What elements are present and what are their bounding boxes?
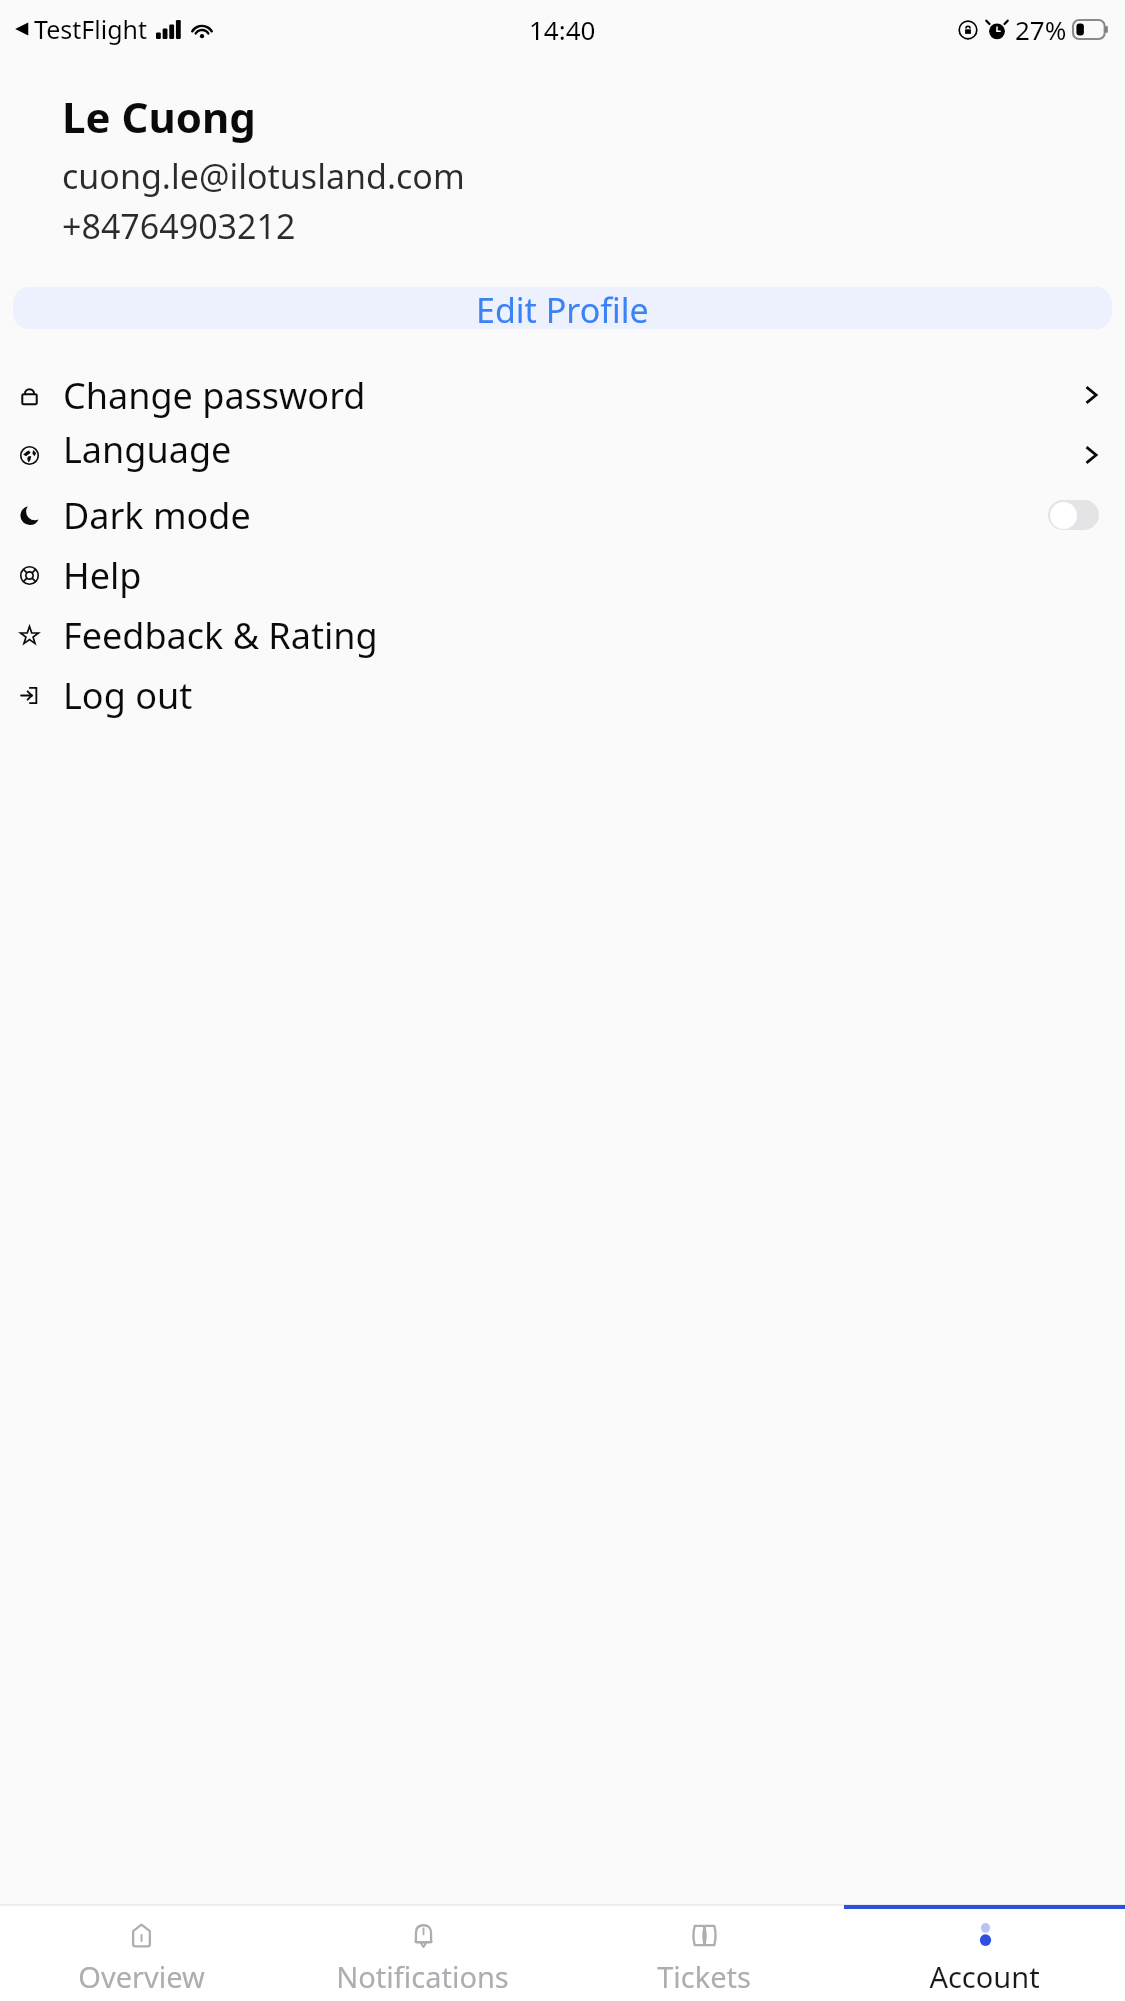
staticText: Edit Profile — [476, 287, 649, 329]
staticText: Overview — [78, 1957, 205, 1996]
button[interactable]: Help — [0, 545, 1125, 605]
button[interactable]: Log out — [0, 665, 1125, 725]
button[interactable]: Dark mode — [0, 485, 1125, 545]
staticText: Notifications — [336, 1957, 509, 1996]
button[interactable]: Feedback & Rating — [0, 605, 1125, 665]
button[interactable]: Change password — [0, 365, 1125, 425]
button[interactable]: Notifications — [282, 1915, 563, 2001]
staticText: 14:40 — [529, 12, 596, 47]
staticText: Account — [929, 1957, 1040, 1996]
staticText: Change password — [63, 371, 366, 420]
staticText: cuong.le@ilotusland.com — [62, 153, 465, 199]
staticText: 27% — [1015, 12, 1067, 47]
staticText: Feedback & Rating — [63, 611, 378, 660]
other: Open — [1083, 444, 1099, 466]
button[interactable]: Language — [0, 425, 1125, 485]
button[interactable]: Tickets — [563, 1915, 844, 2001]
button[interactable]: Dark mode toggle — [1048, 500, 1099, 530]
button[interactable]: Account — [844, 1915, 1125, 2001]
staticText: +84764903212 — [62, 203, 296, 249]
staticText: Tickets — [657, 1957, 751, 1996]
staticText: Dark mode — [63, 491, 251, 540]
button[interactable]: Edit Profile — [13, 287, 1112, 329]
staticText: Language — [63, 425, 232, 474]
staticText: Le Cuong — [62, 88, 256, 145]
staticText: TestFlight — [34, 12, 147, 46]
staticText: Help — [63, 551, 142, 600]
other: Open — [1083, 384, 1099, 406]
button[interactable]: Overview — [0, 1915, 282, 2001]
staticText: Log out — [63, 671, 193, 720]
